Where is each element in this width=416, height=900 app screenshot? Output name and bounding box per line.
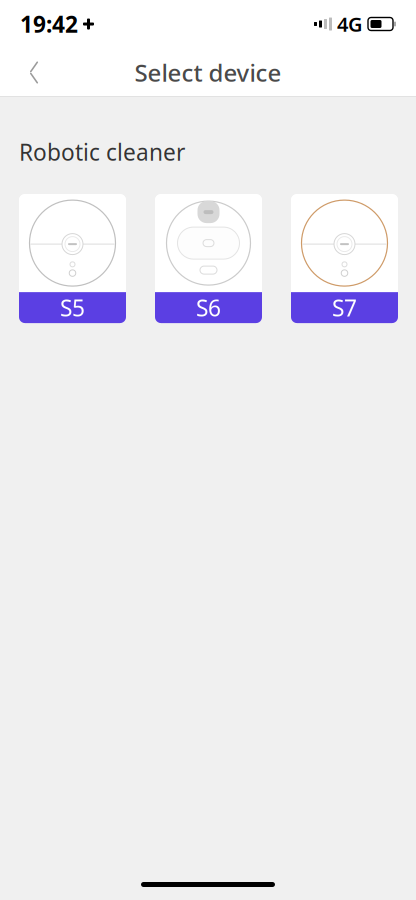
staticText: S7 [332,293,357,323]
staticText: S6 [196,293,221,323]
staticText: 19:42 [20,9,78,39]
button[interactable]: Back [12,48,56,96]
staticText: S5 [60,293,85,323]
button[interactable]: S5 [19,194,126,323]
staticText: Select device [134,57,281,88]
staticText: 4G [337,11,363,37]
staticText: Robotic cleaner [19,137,185,167]
button[interactable]: S6 [155,194,262,323]
button[interactable]: S7 [291,194,398,323]
